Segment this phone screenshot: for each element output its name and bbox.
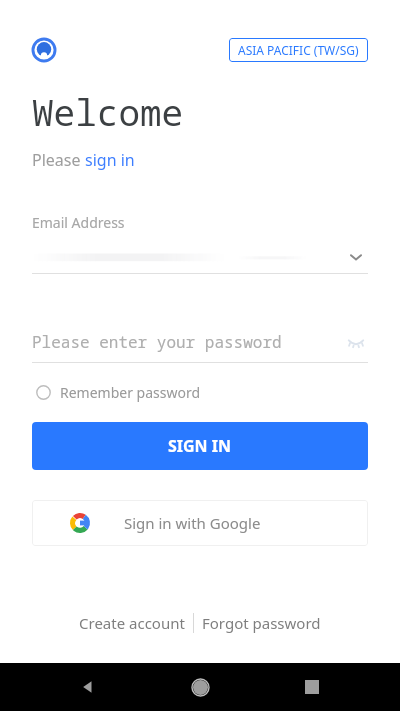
staticText: Email Address — [32, 213, 125, 232]
button[interactable]: SIGN IN — [32, 422, 368, 470]
button[interactable]: Sign in with Google — [32, 500, 368, 546]
button[interactable]: Back — [64, 663, 112, 711]
button[interactable]: Show email suggestions — [344, 246, 368, 268]
button[interactable]: Home — [176, 663, 224, 711]
button[interactable]: Forgot password — [194, 607, 329, 639]
staticText: Create account — [79, 613, 185, 633]
button[interactable]: Remember password — [32, 379, 205, 406]
button[interactable]: App logo — [32, 38, 56, 62]
staticText: Sign in with Google — [124, 513, 261, 533]
staticText: Forgot password — [202, 613, 321, 633]
staticText: ASIA PACIFIC (TW/SG) — [238, 42, 359, 58]
button[interactable]: Create account — [71, 607, 193, 639]
staticText: SIGN IN — [168, 435, 232, 457]
button[interactable]: ASIA PACIFIC (TW/SG) — [229, 38, 368, 62]
button[interactable]: Show email suggestions — [32, 246, 368, 268]
button[interactable]: sign in — [85, 149, 135, 171]
staticText: sign in — [85, 149, 135, 171]
staticText: Please — [32, 149, 85, 171]
staticText: Welcome — [32, 88, 184, 137]
staticText: Remember password — [60, 383, 201, 402]
button[interactable]: Show password — [344, 330, 368, 354]
staticText: Please enter your password — [32, 331, 344, 353]
button[interactable]: Please enter your password — [32, 330, 368, 354]
button[interactable]: Recent apps — [288, 663, 336, 711]
